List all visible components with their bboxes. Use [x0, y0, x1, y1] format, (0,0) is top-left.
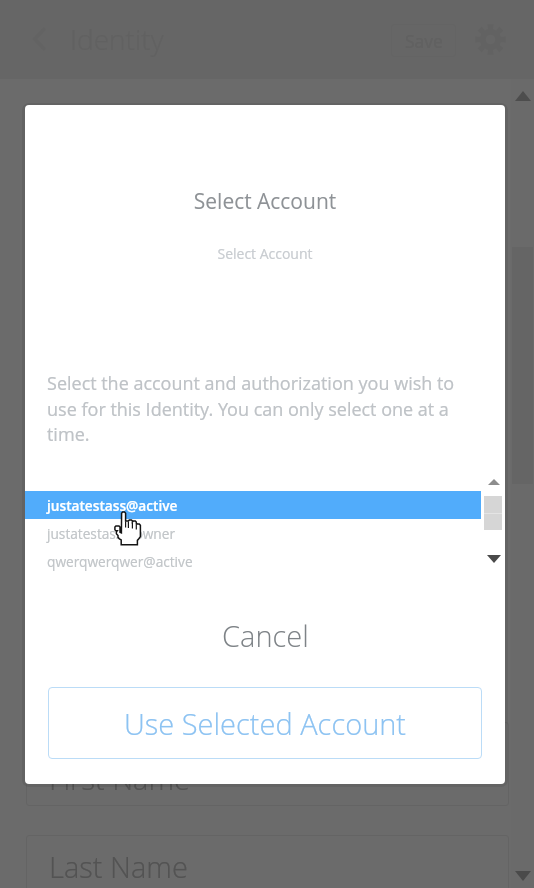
- button[interactable]: Scroll list down: [481, 548, 505, 570]
- button[interactable]: Cancel: [25, 609, 505, 661]
- staticText: qwerqwerqwer@active: [47, 552, 193, 571]
- button[interactable]: justatestass@active: [25, 491, 481, 520]
- staticText: Select Account: [25, 244, 505, 263]
- staticText: justatestass@active: [47, 496, 178, 515]
- button[interactable]: justatestass@owner: [25, 519, 481, 548]
- staticText: Select Account: [25, 187, 505, 216]
- staticText: Use Selected Account: [124, 704, 407, 743]
- button[interactable]: qwerqwerqwer@active: [25, 547, 481, 576]
- staticText: justatestass@owner: [47, 524, 175, 543]
- staticText: Select the account and authorization you…: [47, 371, 459, 446]
- staticText: Last Name: [49, 847, 188, 886]
- staticText: First Name: [49, 759, 190, 798]
- staticText: Cancel: [222, 616, 309, 655]
- button[interactable]: Scroll list up: [481, 471, 505, 493]
- button[interactable]: Scroll up: [511, 84, 534, 108]
- button[interactable]: Scroll down: [511, 864, 534, 888]
- button[interactable]: Use Selected Account: [48, 687, 482, 759]
